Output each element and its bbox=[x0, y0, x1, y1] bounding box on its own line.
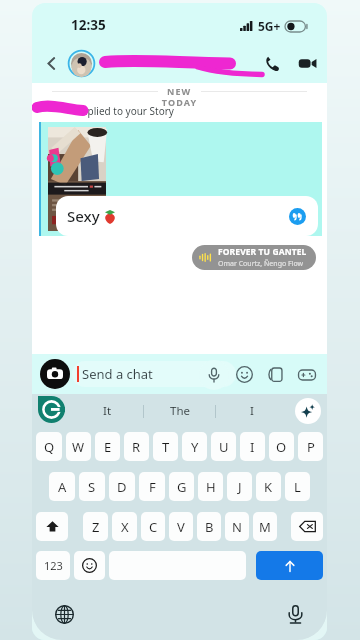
staticText: The bbox=[170, 403, 190, 419]
staticText: TODAY bbox=[32, 96, 327, 108]
staticText: W bbox=[72, 438, 85, 456]
staticText: C bbox=[149, 518, 158, 536]
staticText: NEW bbox=[167, 85, 192, 97]
staticText: E bbox=[104, 438, 112, 456]
button[interactable]: X bbox=[112, 512, 137, 541]
staticText: Sexy bbox=[67, 206, 100, 226]
button[interactable]: Change language bbox=[52, 602, 76, 626]
staticText: K bbox=[264, 478, 273, 496]
button[interactable]: N bbox=[225, 512, 249, 541]
button[interactable]: K bbox=[256, 472, 281, 501]
button[interactable] bbox=[72, 361, 236, 387]
staticText: 5G+ bbox=[258, 18, 281, 34]
button[interactable]: FOREVER TU GANTEL bbox=[192, 245, 316, 270]
button[interactable]: Backspace bbox=[291, 512, 323, 541]
button[interactable]: T bbox=[153, 432, 178, 461]
staticText: It bbox=[103, 403, 112, 419]
button[interactable]: W bbox=[66, 432, 91, 461]
button[interactable]: Emoji bbox=[74, 551, 105, 580]
button[interactable]: O bbox=[269, 432, 294, 461]
button[interactable]: Z bbox=[83, 512, 108, 541]
button[interactable]: Profile bbox=[68, 50, 95, 77]
staticText: X bbox=[121, 518, 129, 536]
staticText: S bbox=[88, 478, 96, 496]
staticText: V bbox=[177, 518, 185, 536]
staticText: U bbox=[219, 438, 229, 456]
button[interactable]: C bbox=[141, 512, 165, 541]
button[interactable]: D bbox=[109, 472, 135, 501]
button[interactable]: Stickers bbox=[229, 359, 260, 390]
button[interactable]: Voice input bbox=[283, 602, 307, 626]
button[interactable]: The bbox=[144, 394, 215, 428]
staticText: Y bbox=[191, 438, 199, 456]
button[interactable]: F bbox=[139, 472, 165, 501]
staticText: I bbox=[250, 403, 254, 419]
staticText: Q bbox=[44, 438, 55, 456]
button[interactable]: H bbox=[198, 472, 223, 501]
button[interactable]: Bitmoji bbox=[260, 359, 291, 390]
button[interactable]: 123 bbox=[36, 551, 70, 580]
staticText: D bbox=[117, 478, 127, 496]
button[interactable]: A bbox=[49, 472, 75, 501]
button[interactable]: Grammarly bbox=[38, 396, 65, 423]
staticText: H bbox=[206, 478, 216, 496]
button[interactable]: Video call bbox=[294, 50, 320, 76]
staticText: P bbox=[307, 438, 315, 456]
button[interactable]: G bbox=[169, 472, 194, 501]
button[interactable]: Quote reply bbox=[289, 208, 306, 225]
staticText: Omar Courtz, Ñengo Flow bbox=[218, 259, 304, 269]
button[interactable]: M bbox=[253, 512, 277, 541]
staticText: M bbox=[259, 518, 271, 536]
button[interactable]: J bbox=[227, 472, 252, 501]
button[interactable]: Sexy bbox=[56, 196, 318, 236]
staticText: J bbox=[238, 478, 242, 496]
button[interactable]: Back bbox=[39, 51, 63, 75]
staticText: G bbox=[177, 478, 187, 496]
button[interactable]: Send bbox=[256, 551, 323, 580]
button[interactable]: I bbox=[216, 394, 287, 428]
staticText: Send a chat bbox=[82, 365, 153, 383]
button[interactable]: L bbox=[285, 472, 310, 501]
staticText: replied to your Story bbox=[78, 104, 174, 118]
button[interactable]: U bbox=[211, 432, 236, 461]
button[interactable]: Shift bbox=[36, 512, 68, 541]
button[interactable]: Camera bbox=[40, 359, 70, 389]
button[interactable]: V bbox=[169, 512, 193, 541]
staticText: I bbox=[250, 438, 255, 456]
button[interactable]: Voice note bbox=[199, 360, 229, 390]
staticText: L bbox=[294, 478, 301, 496]
button[interactable]: It bbox=[72, 394, 143, 428]
button[interactable]: S bbox=[79, 472, 105, 501]
button[interactable]: B bbox=[197, 512, 221, 541]
button[interactable]: AI suggestions bbox=[295, 398, 321, 424]
staticText: FOREVER TU GANTEL bbox=[218, 246, 307, 258]
staticText: T bbox=[162, 438, 170, 456]
staticText: R bbox=[132, 438, 141, 456]
staticText: O bbox=[276, 438, 287, 456]
button[interactable]: Q bbox=[36, 432, 62, 461]
button[interactable]: Y bbox=[182, 432, 207, 461]
staticText: 123 bbox=[44, 558, 63, 573]
staticText: B bbox=[205, 518, 214, 536]
button[interactable]: R bbox=[124, 432, 149, 461]
button[interactable]: E bbox=[95, 432, 120, 461]
button[interactable]: Games bbox=[291, 359, 322, 390]
staticText: Z bbox=[92, 518, 100, 536]
button[interactable]: Call bbox=[258, 50, 284, 76]
staticText: N bbox=[232, 518, 242, 536]
staticText: A bbox=[58, 478, 67, 496]
button[interactable]: P bbox=[298, 432, 323, 461]
staticText: F bbox=[149, 478, 156, 496]
staticText: 12:35 bbox=[71, 16, 106, 34]
button[interactable]: I bbox=[240, 432, 265, 461]
